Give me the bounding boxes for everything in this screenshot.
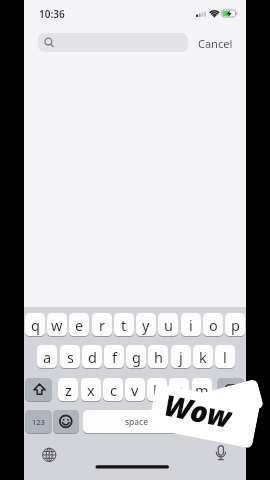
staticText: p: [231, 315, 240, 335]
button[interactable]: m: [192, 378, 212, 401]
staticText: k: [199, 347, 207, 367]
button[interactable]: Cancel: [198, 36, 233, 51]
button[interactable]: t: [114, 313, 134, 336]
staticText: space: [125, 416, 148, 428]
button[interactable]: e: [69, 313, 89, 336]
staticText: b: [153, 380, 162, 400]
staticText: n: [175, 380, 184, 400]
staticText: Wow: [162, 384, 235, 429]
button[interactable]: h: [148, 345, 168, 368]
staticText: l: [223, 347, 227, 367]
button[interactable]: k: [193, 345, 213, 368]
button[interactable]: 123: [25, 410, 52, 433]
button[interactable]: v: [125, 378, 145, 401]
button[interactable]: p: [225, 313, 245, 336]
staticText: s: [67, 347, 74, 367]
staticText: c: [110, 380, 117, 400]
button[interactable]: [148, 383, 260, 449]
button[interactable]: n: [169, 378, 189, 401]
button[interactable]: s: [60, 345, 80, 368]
button[interactable]: [38, 33, 188, 52]
staticText: 10:36: [39, 7, 65, 21]
staticText: q: [31, 315, 40, 335]
button[interactable]: c: [103, 378, 123, 401]
button[interactable]: o: [203, 313, 223, 336]
button[interactable]: [53, 410, 79, 433]
staticText: t: [121, 315, 127, 335]
button[interactable]: w: [47, 313, 67, 336]
staticText: z: [65, 380, 72, 400]
staticText: i: [189, 315, 193, 335]
button[interactable]: [217, 378, 244, 401]
staticText: o: [209, 315, 218, 335]
button[interactable]: i: [181, 313, 201, 336]
button[interactable]: a: [37, 345, 57, 368]
staticText: f: [112, 347, 117, 367]
button[interactable]: l: [215, 345, 235, 368]
button[interactable]: [35, 441, 63, 469]
staticText: r: [99, 315, 105, 335]
button[interactable]: q: [25, 313, 45, 336]
button[interactable]: z: [58, 378, 78, 401]
button[interactable]: [25, 378, 52, 401]
staticText: y: [142, 315, 150, 335]
button[interactable]: y: [136, 313, 156, 336]
staticText: d: [88, 347, 97, 367]
staticText: u: [164, 315, 173, 335]
staticText: 123: [32, 417, 45, 427]
staticText: w: [51, 315, 63, 335]
button[interactable]: u: [158, 313, 178, 336]
staticText: m: [195, 380, 209, 400]
staticText: h: [154, 347, 163, 367]
button[interactable]: d: [82, 345, 102, 368]
staticText: g: [132, 347, 141, 367]
button[interactable]: j: [171, 345, 191, 368]
button[interactable]: x: [81, 378, 101, 401]
button[interactable]: f: [104, 345, 124, 368]
staticText: v: [131, 380, 139, 400]
button[interactable]: [207, 439, 235, 467]
staticText: e: [75, 315, 84, 335]
button[interactable]: b: [147, 378, 167, 401]
staticText: j: [179, 347, 183, 367]
staticText: a: [43, 347, 52, 367]
staticText: x: [87, 380, 95, 400]
button[interactable]: g: [126, 345, 146, 368]
button[interactable]: space: [83, 410, 190, 433]
button[interactable]: [193, 410, 244, 433]
button[interactable]: r: [92, 313, 112, 336]
